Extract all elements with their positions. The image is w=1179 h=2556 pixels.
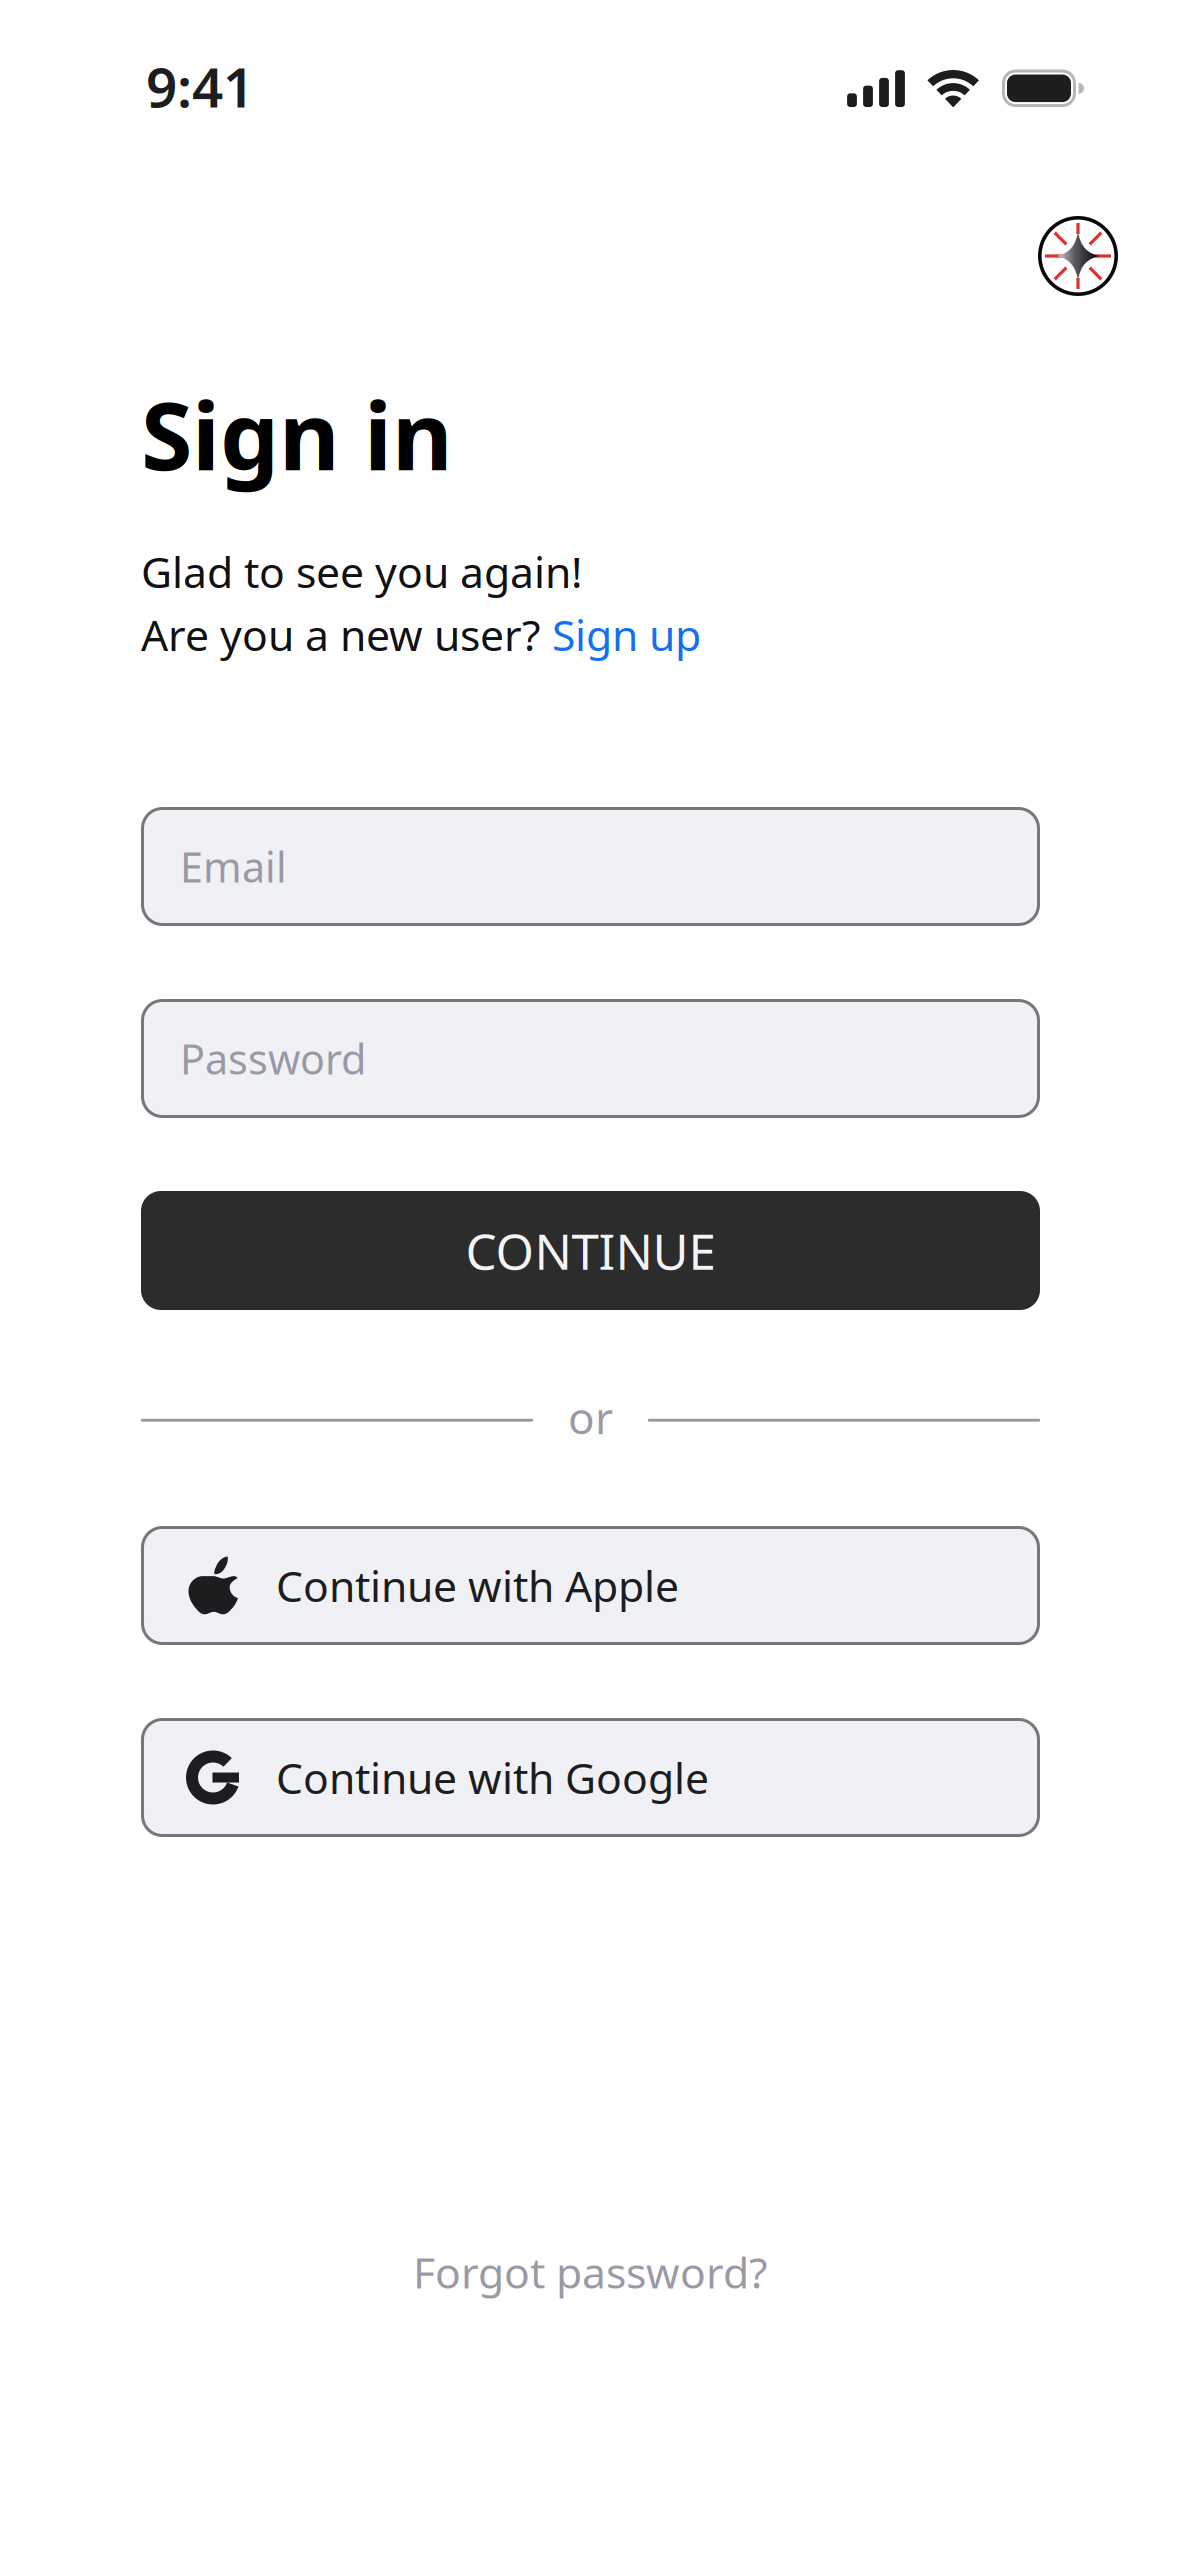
staticText: Sign up — [552, 606, 701, 663]
staticText: Glad to see you again! — [141, 543, 582, 589]
staticText: Sign in — [141, 372, 453, 492]
button[interactable]: Forgot password? — [141, 2232, 1040, 2312]
button[interactable]: CONTINUE — [141, 1191, 1040, 1310]
staticText: Email — [180, 839, 287, 894]
staticText: or — [568, 1388, 613, 1446]
button[interactable]: Sign up — [552, 606, 701, 663]
staticText: Continue with Google — [276, 1749, 709, 1806]
staticText: Continue with Apple — [276, 1557, 679, 1614]
staticText: CONTINUE — [465, 1218, 715, 1283]
button[interactable]: Password — [141, 999, 1040, 1118]
staticText: Password — [180, 1031, 366, 1086]
button[interactable]: Email — [141, 807, 1040, 926]
staticText: 9:41 — [146, 50, 254, 96]
staticText: Are you a new user? — [141, 606, 552, 663]
button[interactable]: Continue with Google — [141, 1718, 1040, 1837]
staticText: Forgot password? — [413, 2244, 768, 2300]
button[interactable]: Continue with Apple — [141, 1526, 1040, 1645]
button[interactable]: App logo — [1038, 216, 1118, 296]
